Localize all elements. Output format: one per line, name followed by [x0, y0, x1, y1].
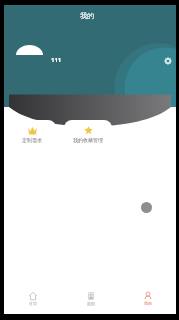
staticText: 我的收藏管理	[73, 137, 103, 143]
staticText: 定制需求	[22, 137, 42, 143]
button[interactable]: 我的	[119, 292, 176, 306]
staticText: 我的	[80, 11, 94, 20]
button[interactable]: Scroll to top	[141, 202, 152, 213]
button[interactable]: 定制需求	[8, 120, 56, 149]
button[interactable]: 惠购	[62, 292, 119, 306]
button[interactable]: Settings	[161, 54, 174, 67]
button[interactable]: 首页	[4, 292, 62, 306]
button[interactable]: 我的收藏管理	[64, 120, 112, 149]
staticText: 111	[51, 56, 62, 64]
staticText: 首页	[29, 301, 37, 306]
staticText: 惠购	[87, 301, 95, 306]
staticText: 我的	[144, 301, 152, 306]
